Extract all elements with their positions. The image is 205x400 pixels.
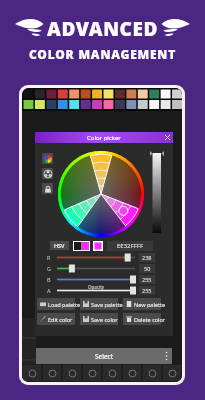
button[interactable]: Grid [83, 365, 101, 381]
staticText: 50 [144, 265, 151, 272]
button[interactable]: Image [143, 365, 161, 381]
button[interactable]: Layers [63, 365, 81, 381]
staticText: EE32FFFF [117, 242, 143, 250]
button[interactable]: Harmony [42, 168, 53, 179]
staticText: B [47, 276, 51, 283]
button[interactable]: EE32FFFF [107, 241, 153, 251]
button[interactable]: Color picker [35, 132, 173, 143]
button[interactable]: Zoom [23, 365, 41, 381]
staticText: Load palette [48, 301, 81, 308]
button[interactable]: Fill [103, 365, 121, 381]
button[interactable]: Redo [163, 365, 181, 381]
staticText: Delete color [134, 316, 166, 323]
staticText: 238 [142, 254, 152, 261]
staticText: HSV [54, 242, 65, 249]
staticText: Save palette [91, 301, 123, 308]
staticText: ADVANCED [47, 16, 159, 42]
button[interactable]: Load palette [37, 298, 75, 310]
staticText: 255 [142, 276, 152, 283]
button[interactable]: Save color [80, 313, 118, 325]
staticText: Save color [91, 316, 118, 323]
button[interactable]: HSV [50, 241, 69, 250]
staticText: Edit color [48, 316, 73, 323]
staticText: Opacity [88, 284, 105, 290]
button[interactable]: Color wheel [42, 153, 53, 164]
button[interactable]: Select [36, 348, 172, 364]
staticText: G [47, 265, 52, 272]
staticText: A [47, 287, 51, 294]
button[interactable]: Lock [42, 183, 53, 194]
button[interactable]: Save palette [80, 298, 118, 310]
staticText: Color picker [87, 134, 121, 142]
button[interactable]: Move [43, 365, 61, 381]
staticText: R [47, 254, 51, 261]
staticText: 255 [142, 287, 152, 294]
staticText: Select [95, 352, 114, 361]
staticText: COLOR MANAGEMENT [29, 46, 177, 62]
button[interactable]: Edit color [37, 313, 75, 325]
button[interactable]: Shape [123, 365, 141, 381]
button[interactable]: Delete color [123, 313, 161, 325]
button[interactable]: Close [161, 132, 173, 143]
button[interactable]: New palette [123, 298, 161, 310]
staticText: New palette [134, 301, 165, 308]
